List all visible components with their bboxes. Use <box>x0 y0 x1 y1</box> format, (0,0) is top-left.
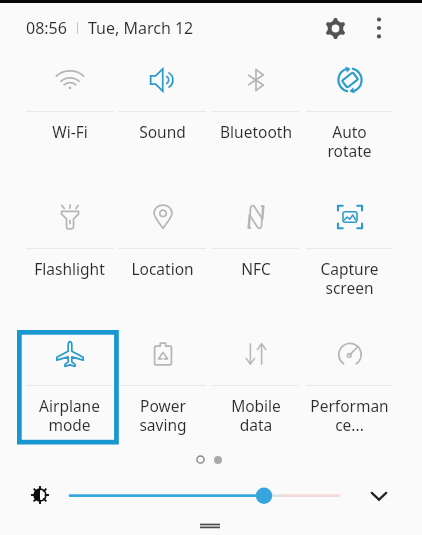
button[interactable]: Capture screen <box>303 185 396 322</box>
staticText: Capture screen <box>320 258 379 298</box>
staticText: Airplane mode <box>39 395 100 435</box>
staticText: Bluetooth <box>220 121 292 142</box>
button[interactable]: Brightness slider <box>60 483 350 509</box>
button[interactable]: NFC <box>209 185 302 322</box>
button[interactable]: Airplane mode <box>23 322 116 459</box>
staticText: Power saving <box>139 395 187 435</box>
button[interactable]: Flashlight <box>23 185 116 322</box>
button[interactable]: Bluetooth <box>209 48 302 185</box>
staticText: Performan ce... <box>310 395 389 435</box>
staticText: NFC <box>241 258 271 279</box>
staticText: Sound <box>139 121 186 142</box>
button[interactable]: More options <box>363 12 395 44</box>
staticText: Mobile data <box>231 395 281 435</box>
button[interactable]: Performan ce... <box>303 322 396 459</box>
staticText: Location <box>131 258 194 279</box>
button[interactable]: Location <box>116 185 209 322</box>
button[interactable]: Expand <box>363 480 395 512</box>
staticText: Auto rotate <box>327 121 372 161</box>
button[interactable]: Settings <box>317 10 353 46</box>
button[interactable]: Mobile data <box>209 322 302 459</box>
button[interactable]: Auto rotate <box>303 48 396 185</box>
staticText: 08:56 <box>26 17 67 39</box>
button[interactable]: Power saving <box>116 322 209 459</box>
button[interactable]: Sound <box>116 48 209 185</box>
button[interactable]: Wi-Fi <box>23 48 116 185</box>
staticText: Wi-Fi <box>52 121 88 142</box>
staticText: Flashlight <box>34 258 105 279</box>
staticText: Tue, March 12 <box>88 17 194 39</box>
